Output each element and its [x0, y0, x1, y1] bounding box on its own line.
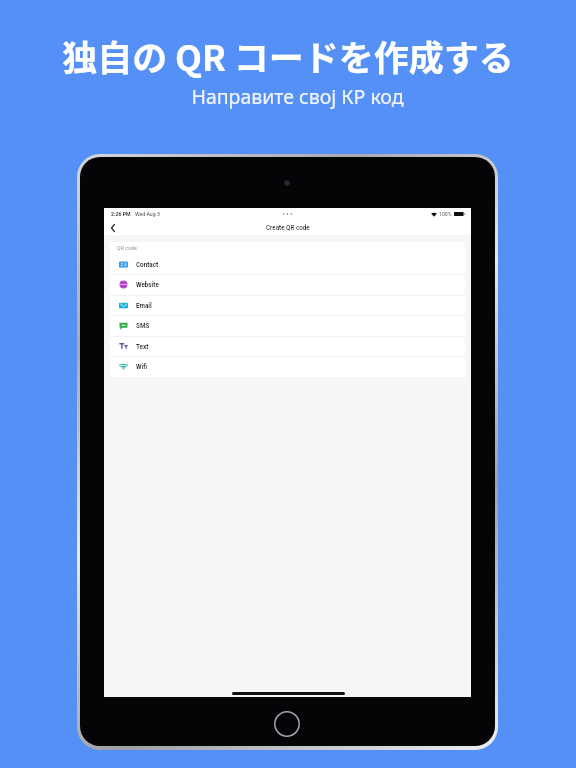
staticText: Website	[136, 281, 159, 288]
button[interactable]: Back	[105, 220, 120, 235]
staticText: Contact	[136, 261, 159, 268]
staticText: 独自の QR コードを作成する	[62, 30, 514, 81]
button[interactable]: SMS	[110, 315, 465, 336]
staticText: Email	[136, 302, 152, 309]
staticText: 100%	[439, 211, 452, 217]
button[interactable]: Text	[110, 336, 465, 357]
staticText: SMS	[136, 322, 150, 329]
staticText: QR code	[117, 245, 137, 251]
staticText: Wifi	[136, 363, 148, 370]
staticText: Create QR code	[266, 224, 310, 231]
button[interactable]: Website	[110, 274, 465, 295]
staticText: Направите свој КР код	[191, 83, 404, 110]
button[interactable]: Wifi	[110, 356, 465, 377]
staticText: Text	[136, 343, 149, 350]
button[interactable]: Contact	[110, 254, 465, 275]
button[interactable]: Email	[110, 295, 465, 316]
staticText: 2:26 PM	[111, 211, 131, 217]
staticText: Wed Aug 3	[135, 211, 160, 217]
